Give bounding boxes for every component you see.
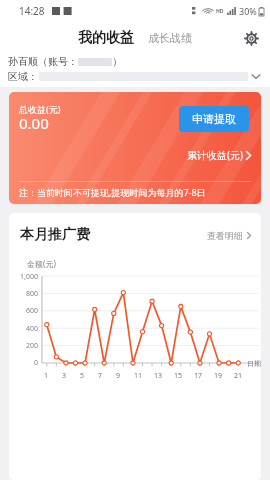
staticText: 0 [9, 358, 38, 366]
staticText: 5 [80, 371, 85, 381]
staticText: 17 [194, 371, 203, 381]
staticText: 孙百顺（账号： [8, 55, 78, 68]
button[interactable]: 成长战绩 [148, 31, 192, 45]
staticText: 9 [116, 371, 121, 381]
staticText: 600 [9, 306, 38, 314]
staticText: 本月推广费 [20, 226, 90, 244]
button[interactable]: 累计收益(元) [187, 148, 251, 162]
button[interactable]: Settings [239, 26, 263, 50]
staticText: 1,000 [9, 272, 38, 280]
button[interactable]: Select region [248, 68, 264, 84]
staticText: 13 [154, 371, 163, 381]
button[interactable]: 申请提取 [179, 106, 249, 132]
staticText: HD [216, 8, 224, 15]
staticText: 注：当前时间不可提现,提现时间为每月的7-8日 [19, 186, 206, 198]
staticText: 15 [174, 371, 183, 381]
staticText: 0.00 [19, 113, 49, 133]
staticText: 14:28 [19, 4, 45, 18]
staticText: 金额(元) [27, 258, 56, 269]
staticText: 30% [239, 5, 257, 17]
staticText: 200 [9, 341, 38, 349]
staticText: 19 [214, 371, 223, 381]
button[interactable]: 查看明细 [207, 230, 251, 241]
staticText: 成长战绩 [148, 31, 192, 45]
staticText: 400 [9, 324, 38, 332]
staticText: 日期 [247, 359, 261, 368]
staticText: 800 [9, 289, 38, 297]
staticText: 11 [134, 371, 143, 381]
staticText: 7 [98, 371, 103, 381]
staticText: 1 [44, 371, 49, 381]
staticText: ） [112, 55, 122, 68]
staticText: 21 [234, 371, 243, 381]
staticText: 区域： [8, 70, 38, 83]
staticText: 申请提取 [192, 112, 236, 126]
staticText: 3 [62, 371, 67, 381]
staticText: 累计收益(元) [187, 148, 243, 162]
staticText: 总收益(元) [19, 103, 61, 115]
staticText: 查看明细 [207, 230, 243, 241]
staticText: 我的收益 [78, 29, 134, 47]
